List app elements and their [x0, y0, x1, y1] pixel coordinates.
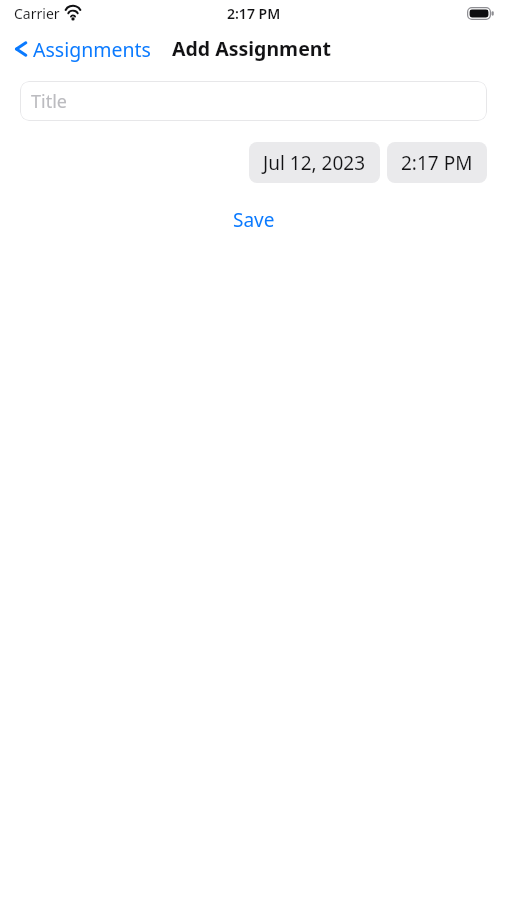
staticText: Jul 12, 2023: [263, 150, 366, 176]
button[interactable]: 2:17 PM: [387, 142, 487, 183]
staticText: 2:17 PM: [401, 150, 473, 176]
staticText: Assignments: [33, 36, 151, 63]
staticText: 2:17 PM: [227, 4, 281, 23]
button[interactable]: Jul 12, 2023: [249, 142, 380, 183]
staticText: Save: [233, 207, 275, 233]
staticText: Title: [31, 89, 67, 114]
button[interactable]: Save: [225, 204, 283, 236]
other: Back to Assignments: [9, 35, 33, 63]
button[interactable]: Title: [20, 81, 487, 121]
staticText: Add Assignment: [172, 35, 331, 62]
staticText: Carrier: [14, 4, 60, 23]
button[interactable]: Back to Assignments: [9, 35, 155, 63]
